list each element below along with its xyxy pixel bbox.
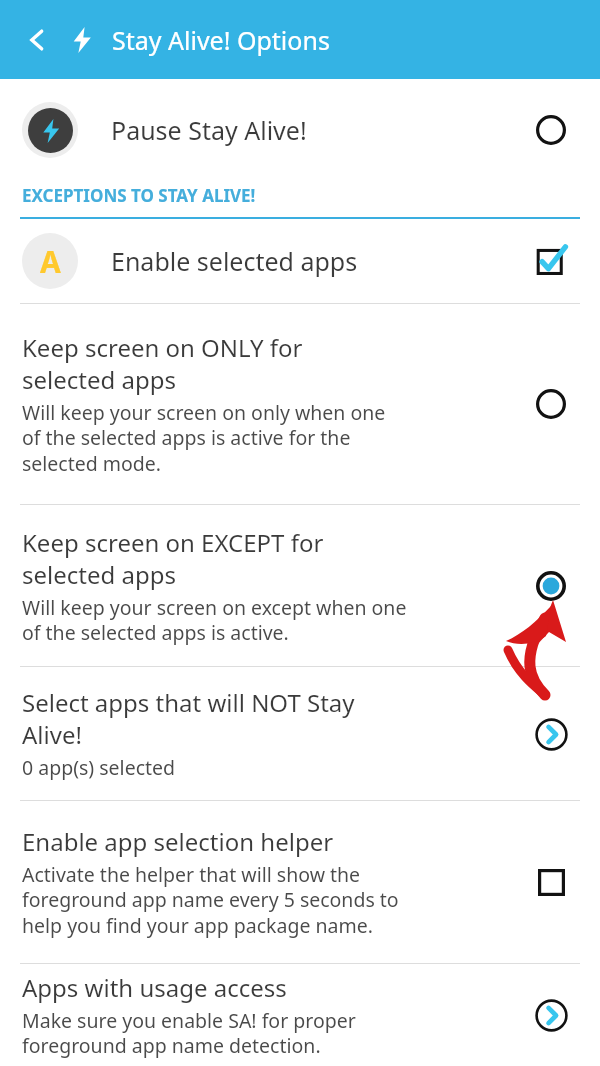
button[interactable]: Not selected xyxy=(530,109,572,151)
staticText: Stay Alive! Options xyxy=(112,23,330,57)
button[interactable]: Stay Alive xyxy=(60,18,104,62)
button[interactable]: Not selected xyxy=(530,383,572,425)
button[interactable]: Checkbox unchecked xyxy=(530,861,572,903)
staticText: A xyxy=(40,241,61,282)
staticText: Select apps that will NOT Stay Alive! xyxy=(22,686,355,751)
staticText: Keep screen on ONLY for selected apps xyxy=(22,331,303,396)
staticText: Apps with usage access xyxy=(22,971,287,1004)
button[interactable]: Open xyxy=(530,713,572,755)
button[interactable]: Keep screen on ONLY for selected apps xyxy=(0,304,600,504)
staticText: Will keep your screen on except when one… xyxy=(22,594,407,646)
button[interactable]: Select apps that will NOT Stay Alive! xyxy=(0,667,600,800)
staticText: Will keep your screen on only when one o… xyxy=(22,399,386,477)
button[interactable]: Open xyxy=(530,994,572,1036)
button[interactable]: Keep screen on EXCEPT for selected apps xyxy=(0,505,600,666)
staticText: 0 app(s) selected xyxy=(22,754,176,781)
staticText: Make sure you enable SA! for proper fore… xyxy=(22,1007,356,1059)
staticText: Enable app selection helper xyxy=(22,825,334,858)
button[interactable]: Selected xyxy=(530,565,572,607)
staticText: EXCEPTIONS TO STAY ALIVE! xyxy=(22,184,256,207)
button[interactable]: Back xyxy=(14,17,60,63)
staticText: Keep screen on EXCEPT for selected apps xyxy=(22,526,324,591)
button[interactable]: Checkbox checked xyxy=(530,240,572,282)
staticText: Enable selected apps xyxy=(111,244,358,278)
button[interactable]: Enable app selection helper xyxy=(0,801,600,963)
staticText: Pause Stay Alive! xyxy=(111,113,307,147)
button[interactable]: Apps with usage access xyxy=(0,964,600,1066)
staticText: Activate the helper that will show the f… xyxy=(22,861,399,939)
button[interactable]: A xyxy=(0,219,600,303)
button[interactable]: Pause Stay Alive! xyxy=(0,79,600,180)
